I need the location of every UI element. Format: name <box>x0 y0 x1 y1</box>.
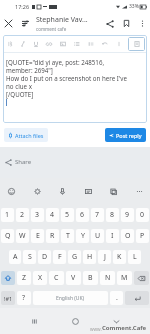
button[interactable]: Keyboard option <box>30 184 44 198</box>
button[interactable]: Back <box>107 312 125 330</box>
button[interactable]: Keyboard option <box>132 184 146 198</box>
staticText: N <box>105 273 111 283</box>
staticText: !#1 <box>4 295 13 302</box>
button[interactable]: Format tool <box>98 36 112 51</box>
button[interactable]: Keyboard option <box>55 184 69 198</box>
staticText: B <box>88 273 93 283</box>
button[interactable]: Format tool <box>56 36 70 51</box>
button[interactable]: Share <box>0 154 150 170</box>
button[interactable]: Close <box>0 15 17 32</box>
button[interactable]: B <box>83 271 98 285</box>
staticText: R <box>50 231 55 241</box>
button[interactable]: Enter <box>125 291 149 305</box>
button[interactable]: Home <box>66 312 84 330</box>
button[interactable]: Format tool <box>42 36 56 51</box>
button[interactable]: 1 <box>1 208 14 222</box>
button[interactable]: Backspace <box>134 271 149 285</box>
staticText: 1 <box>5 210 10 220</box>
button[interactable]: Format tool <box>112 36 126 51</box>
button[interactable]: Recent apps <box>25 312 43 330</box>
button[interactable]: U <box>91 229 104 243</box>
staticText: E <box>36 231 40 241</box>
button[interactable]: Format tool <box>16 36 29 51</box>
button[interactable]: Keyboard option <box>106 184 120 198</box>
button[interactable]: Z <box>17 271 31 285</box>
button[interactable]: . <box>110 291 123 305</box>
staticText: Post reply <box>116 132 142 139</box>
staticText: Attach files <box>15 132 44 139</box>
button[interactable]: X <box>33 271 47 285</box>
staticText: H <box>87 252 93 262</box>
button[interactable]: P <box>136 229 149 243</box>
button[interactable]: Share <box>101 15 118 32</box>
button[interactable]: E <box>31 229 44 243</box>
staticText: How do I put on a screenshot on here I'v… <box>6 74 127 82</box>
staticText: Q <box>5 231 11 241</box>
staticText: member: 2694"] <box>6 66 53 74</box>
staticText: 17:26 <box>15 3 30 10</box>
button[interactable]: M <box>117 271 132 285</box>
staticText: Share <box>15 158 32 166</box>
button[interactable]: Post reply <box>105 128 146 142</box>
button[interactable]: J <box>98 250 111 264</box>
button[interactable]: N <box>100 271 115 285</box>
button[interactable]: 7 <box>91 208 104 222</box>
staticText: F <box>58 252 62 262</box>
staticText: 4 <box>50 210 55 220</box>
staticText: 5 <box>65 210 70 220</box>
button[interactable]: !#1 <box>1 291 15 305</box>
button[interactable]: W <box>16 229 29 243</box>
button[interactable]: V <box>66 271 81 285</box>
button[interactable]: C <box>49 271 64 285</box>
button[interactable]: D <box>38 250 51 264</box>
button[interactable]: F <box>53 250 66 264</box>
button[interactable]: 5 <box>61 208 74 222</box>
button[interactable]: H <box>83 250 96 264</box>
button[interactable]: Format tool <box>70 36 84 51</box>
staticText: 2 <box>20 210 25 220</box>
staticText: Stephanie Vav... <box>36 15 88 25</box>
staticText: P <box>140 231 145 241</box>
button[interactable]: T <box>61 229 74 243</box>
staticText: 3 <box>35 210 40 220</box>
staticText: English (UK) <box>56 295 85 302</box>
button[interactable]: Format tool <box>29 36 42 51</box>
button[interactable]: S <box>23 250 36 264</box>
button[interactable]: 4 <box>46 208 59 222</box>
button[interactable]: Keyboard option <box>81 184 95 198</box>
button[interactable]: G <box>68 250 81 264</box>
button[interactable]: A <box>9 250 21 264</box>
button[interactable]: 8 <box>106 208 119 222</box>
button[interactable]: 6 <box>76 208 89 222</box>
staticText: X <box>38 273 43 283</box>
button[interactable]: Bookmark <box>118 15 135 32</box>
button[interactable]: Threads <box>17 15 34 32</box>
button[interactable]: More options <box>135 16 150 31</box>
staticText: . <box>116 293 118 303</box>
staticText: 33% <box>129 3 139 10</box>
button[interactable]: 0 <box>136 208 149 222</box>
staticText: K <box>117 252 122 262</box>
button[interactable]: Shift <box>1 271 15 285</box>
button[interactable]: L <box>128 250 141 264</box>
staticText: www. <box>90 326 102 332</box>
button[interactable]: Keyboard option <box>4 184 18 198</box>
button[interactable]: O <box>121 229 134 243</box>
button[interactable]: 3 <box>31 208 44 222</box>
button[interactable]: Insert media <box>128 37 145 51</box>
button[interactable]: Attach files <box>4 128 48 142</box>
button[interactable]: 9 <box>121 208 134 222</box>
staticText: Comment.Cafe <box>102 324 147 332</box>
staticText: I <box>111 231 114 241</box>
button[interactable]: ? <box>17 291 31 305</box>
button[interactable]: R <box>46 229 59 243</box>
button[interactable]: English (UK) <box>33 291 108 305</box>
button[interactable]: 2 <box>16 208 29 222</box>
button[interactable]: Q <box>1 229 14 243</box>
staticText: [/QUOTE] <box>6 90 34 98</box>
button[interactable]: Format tool <box>3 36 16 51</box>
button[interactable]: Format tool <box>84 36 98 51</box>
button[interactable]: I <box>106 229 119 243</box>
button[interactable]: Y <box>76 229 89 243</box>
button[interactable]: K <box>113 250 126 264</box>
